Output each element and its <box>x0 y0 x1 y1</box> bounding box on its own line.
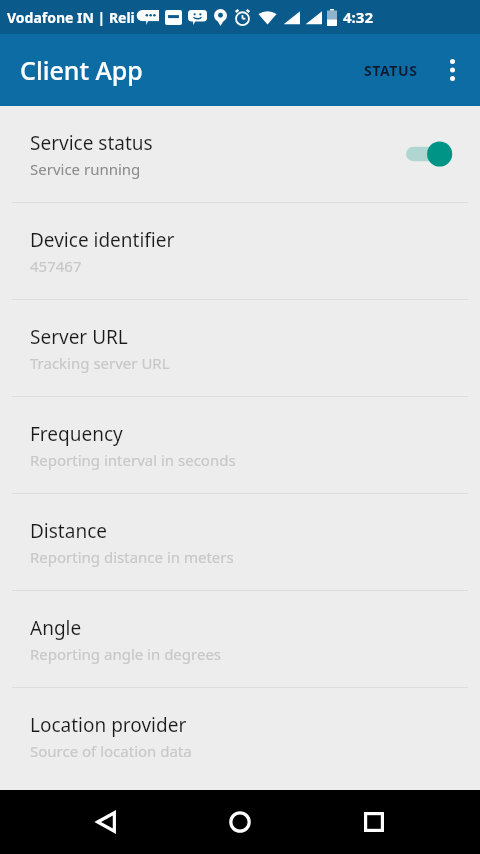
staticText: Distance <box>30 518 107 544</box>
staticText: Angle <box>30 615 82 641</box>
staticText: 457467 <box>30 256 82 276</box>
staticText: STATUS <box>364 61 418 80</box>
staticText: Server URL <box>30 324 128 350</box>
staticText: Service running <box>30 159 141 179</box>
staticText: Reporting distance in meters <box>30 547 234 567</box>
button[interactable]: Server URL <box>0 300 480 396</box>
button[interactable]: STATUS <box>354 47 428 94</box>
button[interactable]: Home <box>212 794 268 850</box>
staticText: Service status <box>30 130 153 156</box>
button[interactable]: Back <box>78 794 134 850</box>
staticText: Vodafone IN | Reli <box>7 8 135 27</box>
staticText: Frequency <box>30 421 123 447</box>
staticText: Reporting angle in degrees <box>30 644 222 664</box>
button[interactable]: Service status <box>0 106 480 202</box>
staticText: Device identifier <box>30 227 175 253</box>
button[interactable]: Recent apps <box>346 794 402 850</box>
button[interactable]: Frequency <box>0 397 480 493</box>
staticText: 4:32 <box>343 7 373 27</box>
button[interactable]: Location provider <box>0 688 480 784</box>
button[interactable]: Angle <box>0 591 480 687</box>
staticText: Client App <box>20 53 143 87</box>
staticText: Tracking server URL <box>30 353 170 373</box>
button[interactable]: Device identifier <box>0 203 480 299</box>
button[interactable]: Distance <box>0 494 480 590</box>
button[interactable]: Toggle service <box>406 137 458 171</box>
staticText: Reporting interval in seconds <box>30 450 236 470</box>
button[interactable]: More options <box>428 46 476 94</box>
staticText: Location provider <box>30 712 187 738</box>
staticText: Source of location data <box>30 741 192 761</box>
